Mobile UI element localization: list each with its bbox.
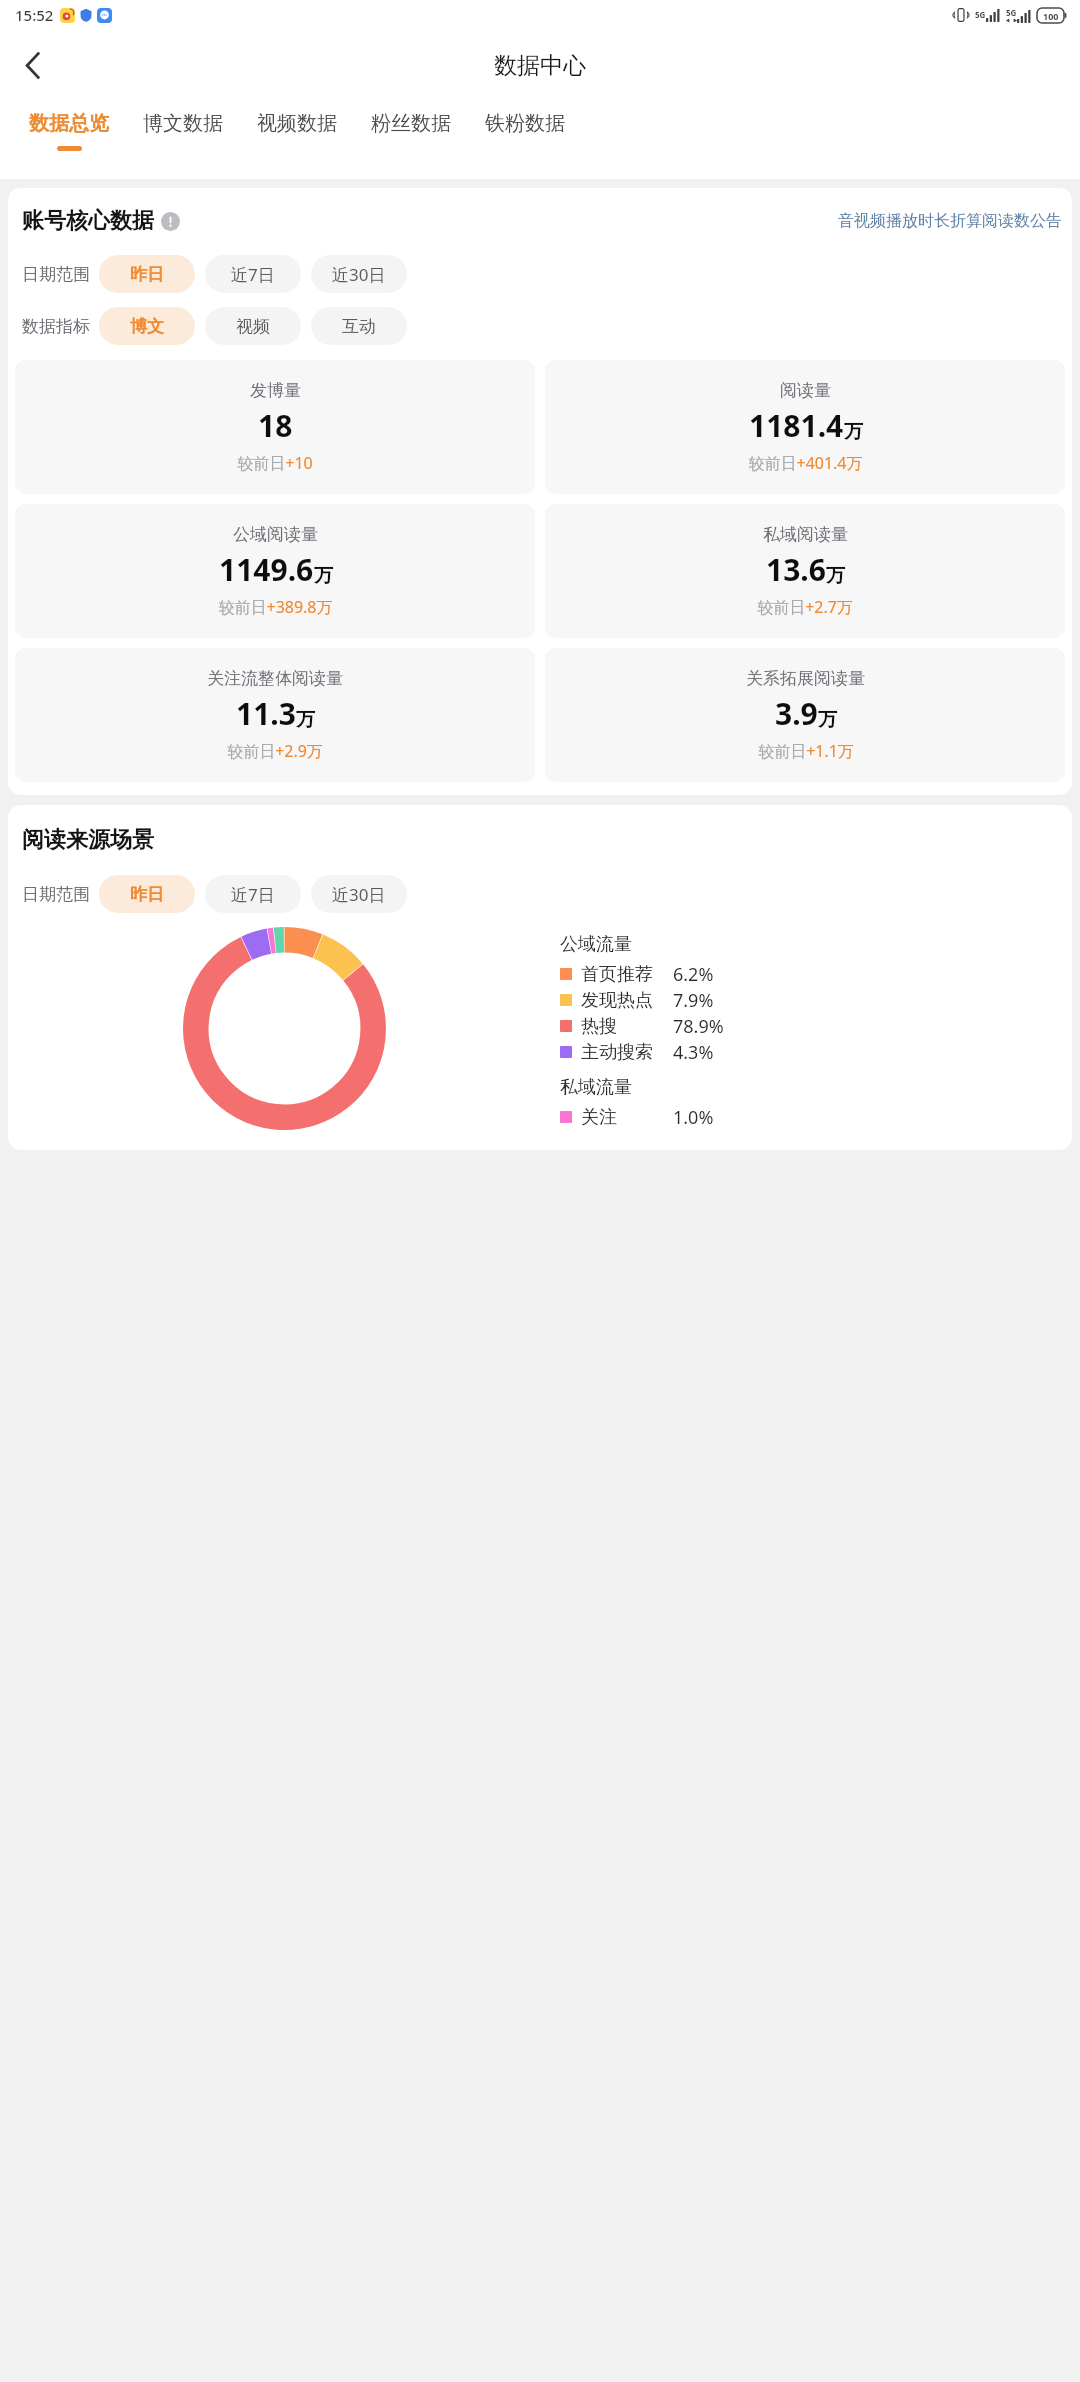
button[interactable]: 互动 <box>311 307 407 345</box>
staticText: 较前日+389.8万 <box>218 596 333 618</box>
button[interactable]: 说明 <box>161 212 180 231</box>
staticText: 阅读来源场景 <box>22 826 154 854</box>
staticText: 阅读量 <box>780 380 831 401</box>
staticText: 发现热点 <box>581 989 653 1012</box>
staticText: 日期范围 <box>22 264 90 285</box>
button[interactable]: 发博量 <box>15 360 535 494</box>
staticText: 博文数据 <box>143 111 223 136</box>
button[interactable]: 博文 <box>99 307 195 345</box>
button[interactable]: 铁粉数据 <box>468 101 582 146</box>
staticText: 近30日 <box>332 883 386 906</box>
staticText: 较前日+2.9万 <box>227 740 323 762</box>
staticText: 万 <box>314 564 333 588</box>
staticText: 万 <box>844 420 863 444</box>
staticText: 近7日 <box>231 263 275 286</box>
staticText: 关注 <box>581 1106 617 1129</box>
staticText: 音视频播放时长折算阅读数公告 <box>838 211 1062 231</box>
staticText: 11.3 <box>236 693 296 734</box>
staticText: 关系拓展阅读量 <box>746 668 865 689</box>
staticText: 较前日+1.1万 <box>758 740 854 762</box>
button[interactable]: 粉丝数据 <box>354 101 468 146</box>
button[interactable]: 昨日 <box>99 255 195 293</box>
staticText: 较前日+2.7万 <box>757 596 853 618</box>
button[interactable]: 首页推荐 <box>560 961 1066 987</box>
button[interactable]: 博文数据 <box>126 101 240 146</box>
button[interactable]: 热搜 <box>560 1013 1066 1039</box>
staticText: 热搜 <box>581 1015 617 1038</box>
staticText: 日期范围 <box>22 884 90 905</box>
staticText: 1181.4 <box>749 405 844 446</box>
staticText: 视频数据 <box>257 111 337 136</box>
staticText: 7.9% <box>673 988 714 1013</box>
button[interactable]: 关注流整体阅读量 <box>15 648 535 782</box>
staticText: 数据中心 <box>494 51 586 80</box>
staticText: 100 <box>1043 10 1059 22</box>
staticText: 公域阅读量 <box>233 524 318 545</box>
button[interactable]: 数据总览 <box>12 101 126 151</box>
staticText: 账号核心数据 <box>22 207 154 235</box>
staticText: 5G <box>1006 7 1017 18</box>
button[interactable]: 视频 <box>205 307 301 345</box>
staticText: 铁粉数据 <box>485 111 565 136</box>
button[interactable]: 音视频播放时长折算阅读数公告 <box>838 211 1062 231</box>
button[interactable]: 近30日 <box>311 255 407 293</box>
button[interactable]: 发现热点 <box>560 987 1066 1013</box>
staticText: 13.6 <box>766 549 826 590</box>
button[interactable]: 近7日 <box>205 255 301 293</box>
staticText: 18 <box>258 405 293 446</box>
staticText: 万 <box>818 708 837 732</box>
staticText: 3.9 <box>775 693 818 734</box>
staticText: 私域流量 <box>560 1076 632 1099</box>
staticText: 数据指标 <box>22 316 90 337</box>
button[interactable]: 昨日 <box>99 875 195 913</box>
button[interactable]: 私域阅读量 <box>545 504 1065 638</box>
button[interactable]: 视频数据 <box>240 101 354 146</box>
staticText: 公域流量 <box>560 933 632 956</box>
staticText: 较前日+401.4万 <box>748 452 863 474</box>
staticText: 4.3% <box>673 1040 714 1065</box>
button[interactable]: 关系拓展阅读量 <box>545 648 1065 782</box>
staticText: 数据总览 <box>29 111 109 136</box>
staticText: 万 <box>826 564 845 588</box>
button[interactable]: 近30日 <box>311 875 407 913</box>
button[interactable]: 关注 <box>560 1104 1066 1130</box>
staticText: 主动搜索 <box>581 1041 653 1064</box>
staticText: 1.0% <box>673 1105 714 1130</box>
staticText: 1149.6 <box>219 549 314 590</box>
staticText: 视频 <box>236 316 270 337</box>
button[interactable]: 主动搜索 <box>560 1039 1066 1065</box>
staticText: 较前日+10 <box>237 452 313 474</box>
button[interactable]: 返回 <box>6 39 58 91</box>
staticText: 万 <box>296 708 315 732</box>
staticText: 5G <box>975 9 986 20</box>
button[interactable]: 阅读量 <box>545 360 1065 494</box>
staticText: 互动 <box>342 316 376 337</box>
staticText: 15:52 <box>15 5 54 25</box>
staticText: 昨日 <box>130 884 164 905</box>
staticText: 首页推荐 <box>581 963 653 986</box>
staticText: 近30日 <box>332 263 386 286</box>
staticText: 6.2% <box>673 962 714 987</box>
staticText: 近7日 <box>231 883 275 906</box>
button[interactable]: 近7日 <box>205 875 301 913</box>
staticText: 私域阅读量 <box>763 524 848 545</box>
staticText: 博文 <box>130 316 164 337</box>
staticText: 粉丝数据 <box>371 111 451 136</box>
button[interactable]: 公域阅读量 <box>15 504 535 638</box>
staticText: 关注流整体阅读量 <box>207 668 343 689</box>
staticText: 昨日 <box>130 264 164 285</box>
staticText: 发博量 <box>250 380 301 401</box>
staticText: 78.9% <box>673 1014 724 1039</box>
